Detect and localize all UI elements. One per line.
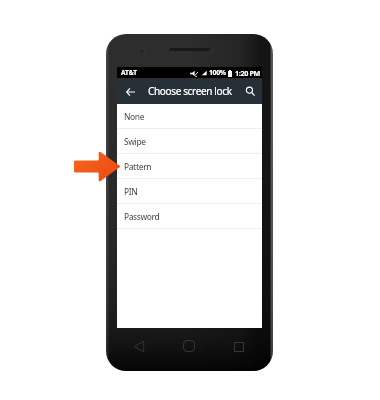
button[interactable]: Back bbox=[130, 337, 148, 355]
button[interactable]: Home bbox=[180, 337, 198, 355]
staticText: AT&T bbox=[121, 68, 137, 77]
staticText: 1:20 PM bbox=[235, 68, 261, 78]
button[interactable]: Search bbox=[242, 83, 259, 100]
button[interactable]: Password bbox=[117, 204, 262, 229]
staticText: Choose screen lock bbox=[148, 84, 232, 98]
button[interactable]: Pointer arrow bbox=[74, 151, 121, 182]
button[interactable]: Recent apps bbox=[230, 338, 248, 356]
staticText: 100% bbox=[209, 68, 226, 78]
staticText: PIN bbox=[124, 186, 138, 197]
button[interactable]: Navigate up bbox=[122, 83, 139, 100]
staticText: None bbox=[124, 111, 145, 122]
button[interactable]: Pattern bbox=[117, 154, 262, 179]
button[interactable]: Swipe bbox=[117, 129, 262, 154]
button[interactable]: PIN bbox=[117, 179, 262, 204]
button[interactable]: None bbox=[117, 104, 262, 129]
staticText: Pattern bbox=[124, 161, 152, 172]
staticText: Password bbox=[124, 211, 160, 222]
staticText: Swipe bbox=[124, 136, 146, 147]
